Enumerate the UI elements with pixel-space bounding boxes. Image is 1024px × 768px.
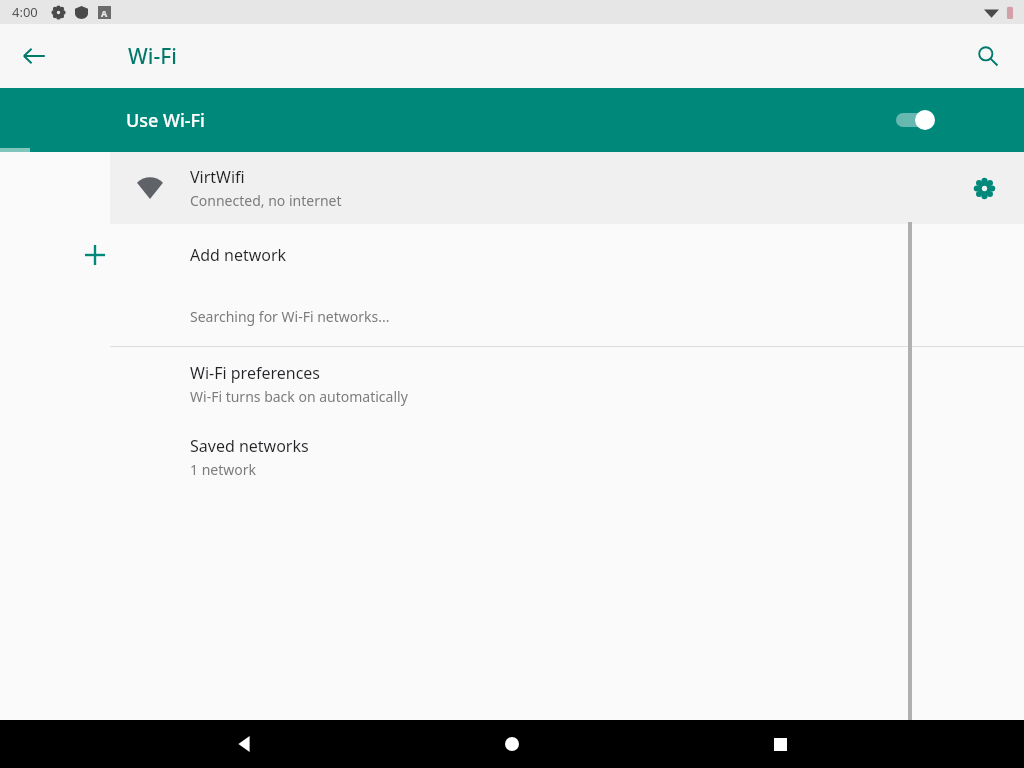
button[interactable]: Home	[488, 720, 536, 768]
staticText: Wi-Fi turns back on automatically	[190, 387, 408, 406]
staticText: Connected, no internet	[190, 191, 342, 210]
staticText: A	[101, 7, 108, 19]
button[interactable]: Saved networks	[0, 420, 1024, 493]
staticText: Add network	[190, 244, 287, 266]
button[interactable]: VirtWifi	[0, 152, 1024, 224]
staticText: 4:00	[12, 3, 38, 21]
staticText: Use Wi-Fi	[126, 108, 205, 133]
button[interactable]: Add network	[0, 224, 1024, 286]
staticText: 1 network	[190, 460, 256, 479]
button[interactable]: Back	[10, 32, 58, 80]
staticText: Saved networks	[190, 435, 309, 457]
button[interactable]: Recent apps	[756, 720, 804, 768]
staticText: Wi-Fi	[128, 42, 177, 71]
staticText: Wi-Fi preferences	[190, 362, 321, 384]
button[interactable]: Back	[220, 720, 268, 768]
button[interactable]: Search	[964, 32, 1012, 80]
staticText: VirtWifi	[190, 166, 245, 188]
button[interactable]: Wi-Fi preferences	[0, 347, 1024, 420]
button[interactable]: Use Wi-Fi	[0, 88, 1024, 152]
button[interactable]: Network settings	[962, 166, 1006, 210]
staticText: Searching for Wi-Fi networks...	[190, 307, 390, 326]
